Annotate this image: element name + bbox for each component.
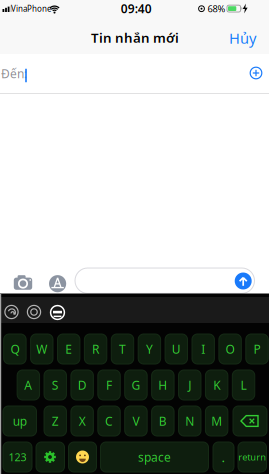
staticText: U bbox=[172, 341, 181, 357]
staticText: H bbox=[158, 377, 167, 393]
staticText: J bbox=[188, 377, 191, 393]
staticText: 09:40 bbox=[121, 0, 152, 16]
staticText: D bbox=[78, 377, 87, 393]
staticText: E bbox=[65, 341, 72, 357]
staticText: X bbox=[79, 413, 86, 429]
staticText: VinaPhone bbox=[11, 3, 52, 14]
staticText: O bbox=[226, 341, 235, 357]
staticText: space bbox=[138, 449, 171, 465]
staticText: C bbox=[105, 413, 113, 429]
staticText: Q bbox=[10, 341, 19, 357]
staticText: T bbox=[119, 341, 126, 357]
staticText: N bbox=[185, 413, 194, 429]
staticText: S bbox=[52, 377, 59, 393]
staticText: Y bbox=[146, 341, 153, 357]
staticText: 123 bbox=[8, 450, 26, 464]
staticText: G bbox=[131, 377, 140, 393]
staticText: Đến: bbox=[1, 65, 27, 81]
staticText: Z bbox=[52, 413, 59, 429]
staticText: L bbox=[240, 377, 246, 393]
staticText: V bbox=[132, 413, 139, 429]
staticText: 68% bbox=[207, 2, 225, 15]
staticText: R bbox=[92, 341, 99, 357]
staticText: K bbox=[213, 377, 220, 393]
staticText: W bbox=[36, 341, 47, 357]
staticText: M bbox=[211, 413, 222, 429]
staticText: B bbox=[159, 413, 167, 429]
staticText: A bbox=[24, 377, 32, 393]
staticText: P bbox=[253, 341, 260, 357]
staticText: Hủy bbox=[229, 28, 256, 48]
staticText: . bbox=[221, 448, 225, 466]
staticText: F bbox=[106, 377, 112, 393]
staticText: return bbox=[238, 451, 266, 463]
staticText: I bbox=[201, 341, 205, 357]
staticText: Tin nhắn mới bbox=[91, 29, 179, 46]
staticText: up bbox=[13, 413, 27, 429]
